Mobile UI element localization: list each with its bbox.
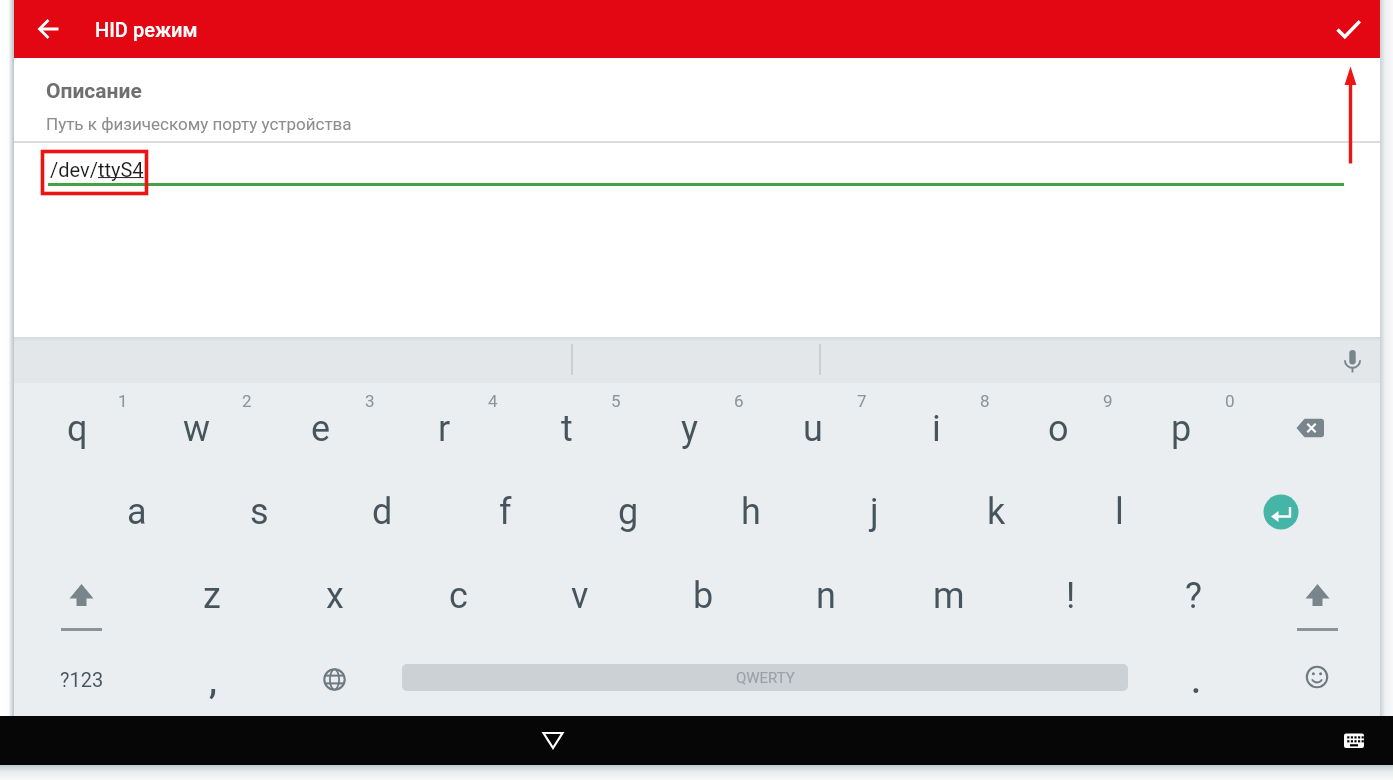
button[interactable] [533, 722, 573, 758]
button[interactable]: , [158, 645, 268, 717]
button[interactable]: z [157, 560, 267, 632]
button[interactable]: j [819, 476, 929, 548]
staticText: m [933, 575, 965, 617]
button[interactable] [46, 561, 116, 631]
staticText: b [693, 575, 714, 617]
staticText: 7 [857, 391, 867, 411]
staticText: 6 [734, 391, 744, 411]
staticText: y [681, 408, 699, 450]
staticText: g [618, 491, 639, 533]
staticText: p [1171, 408, 1192, 450]
button[interactable] [1338, 346, 1368, 376]
staticText: ?123 [60, 668, 104, 691]
button[interactable] [1331, 12, 1365, 46]
button[interactable]: . [1141, 645, 1251, 717]
button[interactable]: h [696, 476, 806, 548]
staticText: q [67, 408, 88, 450]
button[interactable] [1282, 561, 1352, 631]
button[interactable] [1246, 477, 1316, 547]
button[interactable]: t [512, 393, 622, 465]
staticText: . [1191, 660, 1202, 702]
staticText: 1 [118, 391, 128, 411]
staticText: x [326, 575, 344, 617]
button[interactable]: v [525, 560, 635, 632]
staticText: c [449, 575, 468, 617]
staticText: j [870, 491, 879, 533]
button[interactable]: e [266, 393, 376, 465]
staticText: Описание [46, 79, 142, 104]
staticText: Путь к физическому порту устройства [46, 114, 352, 134]
staticText: u [803, 408, 823, 450]
staticText: o [1048, 408, 1069, 450]
staticText: QWERTY [736, 669, 795, 687]
staticText: 5 [611, 391, 621, 411]
staticText: 4 [488, 391, 498, 411]
button[interactable] [32, 12, 66, 46]
button[interactable]: ? [1139, 560, 1249, 632]
button[interactable]: QWERTY [402, 664, 1128, 691]
staticText: s [250, 491, 269, 533]
button[interactable]: ?123 [27, 643, 137, 715]
button[interactable]: i [881, 393, 991, 465]
button[interactable]: g [573, 476, 683, 548]
button[interactable]: m [894, 560, 1004, 632]
button[interactable]: x [280, 560, 390, 632]
button[interactable]: n [771, 560, 881, 632]
staticText: e [311, 408, 331, 450]
button[interactable]: b [648, 560, 758, 632]
staticText: , [209, 660, 217, 702]
button[interactable]: /dev/ttyS4 [50, 154, 690, 184]
button[interactable]: o [1003, 393, 1113, 465]
button[interactable]: y [635, 393, 745, 465]
button[interactable] [300, 645, 370, 715]
staticText: ! [1066, 575, 1076, 617]
staticText: ? [1185, 575, 1203, 617]
button[interactable]: ! [1016, 560, 1126, 632]
staticText: n [816, 575, 836, 617]
button[interactable]: s [204, 476, 314, 548]
staticText: HID режим [95, 18, 198, 41]
button[interactable]: r [389, 393, 499, 465]
staticText: 8 [980, 391, 990, 411]
staticText: 0 [1225, 391, 1235, 411]
button[interactable]: q [22, 393, 132, 465]
staticText: d [372, 491, 393, 533]
button[interactable]: p [1126, 393, 1236, 465]
button[interactable]: a [82, 476, 192, 548]
button[interactable] [1277, 394, 1347, 464]
button[interactable]: k [941, 476, 1051, 548]
staticText: k [987, 491, 1006, 533]
button[interactable] [1336, 724, 1372, 758]
staticText: i [932, 408, 941, 450]
button[interactable]: w [142, 393, 252, 465]
staticText: t [561, 408, 573, 450]
button[interactable]: u [758, 393, 868, 465]
staticText: v [571, 575, 589, 617]
button[interactable]: l [1064, 476, 1174, 548]
staticText: z [203, 575, 221, 617]
staticText: l [1115, 491, 1124, 533]
staticText: w [183, 408, 211, 450]
button[interactable]: c [403, 560, 513, 632]
staticText: h [741, 491, 761, 533]
staticText: 3 [365, 391, 375, 411]
staticText: 2 [242, 391, 252, 411]
button[interactable] [1282, 645, 1352, 715]
staticText: r [438, 408, 451, 450]
staticText: f [499, 491, 512, 533]
button[interactable]: f [450, 476, 560, 548]
staticText: a [127, 491, 147, 533]
staticText: 9 [1103, 391, 1113, 411]
button[interactable]: d [327, 476, 437, 548]
staticText: /dev/ttyS4 [50, 158, 144, 181]
